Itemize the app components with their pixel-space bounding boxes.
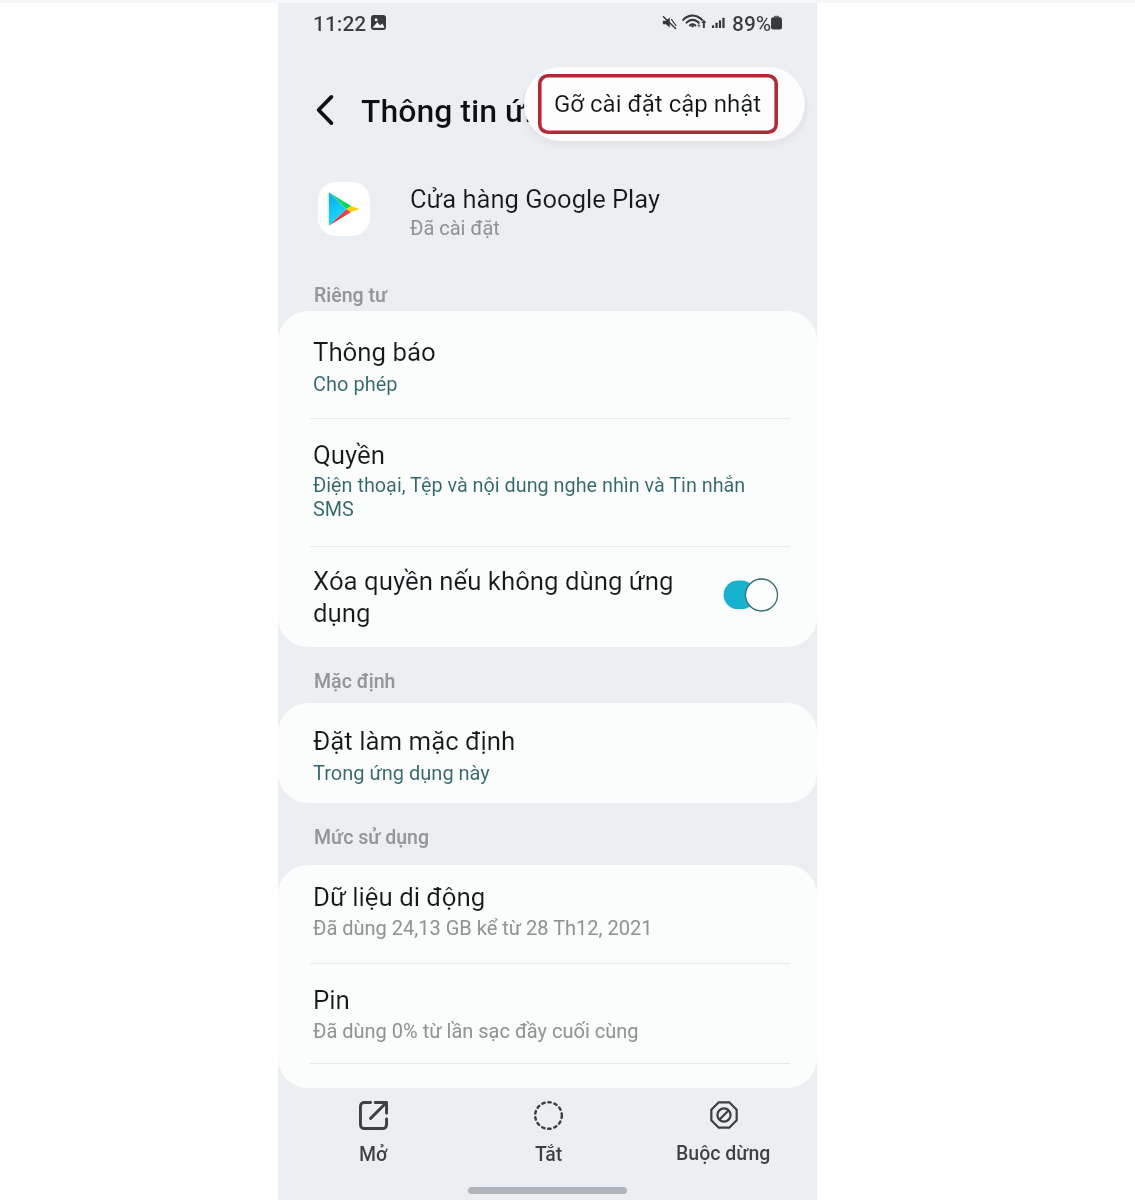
staticText: Đã cài đặt <box>410 216 500 239</box>
staticText: Xóa quyền nếu không dùng ứng dụng <box>313 566 683 629</box>
button[interactable] <box>278 547 817 647</box>
staticText: Buộc dừng <box>676 1142 771 1165</box>
staticText: Mặc định <box>314 670 396 693</box>
button[interactable]: Buộc dừng ứng dụng <box>651 1093 795 1171</box>
button[interactable]: Tắt ứng dụng <box>476 1093 620 1171</box>
button[interactable] <box>278 311 817 418</box>
staticText: Mở <box>359 1143 388 1166</box>
staticText: 11:22 <box>313 12 367 37</box>
button[interactable] <box>278 964 817 1063</box>
staticText: Thông tin ứng dụng <box>361 92 641 130</box>
staticText: Cho phép <box>313 372 398 395</box>
button[interactable] <box>278 703 817 803</box>
staticText: Điện thoại, Tệp và nội dung nghe nhìn và… <box>313 474 763 521</box>
staticText: Dữ liệu di động <box>313 882 486 912</box>
staticText: Riêng tư <box>314 284 387 307</box>
staticText: 89% <box>732 12 772 37</box>
button[interactable]: Xóa quyền nếu không dùng ứng dụng <box>716 572 786 618</box>
button[interactable]: Quay lại <box>303 88 347 132</box>
staticText: Đặt làm mặc định <box>313 726 516 756</box>
staticText: Đã dùng 0% từ lần sạc đầy cuối cùng <box>313 1019 639 1042</box>
staticText: Đã dùng 24,13 GB kể từ 28 Th12, 2021 <box>313 916 653 939</box>
staticText: Tắt <box>535 1143 563 1166</box>
button[interactable] <box>278 865 817 963</box>
staticText: Quyền <box>313 440 385 470</box>
staticText: Pin <box>313 985 350 1015</box>
staticText: Cửa hàng Google Play <box>410 184 661 214</box>
button[interactable]: Gỡ cài đặt cập nhật <box>524 67 805 141</box>
staticText: Gỡ cài đặt cập nhật <box>554 90 762 118</box>
button[interactable]: Mở ứng dụng <box>301 1093 445 1171</box>
button[interactable] <box>278 419 817 546</box>
staticText: Thông báo <box>313 337 436 367</box>
staticText: Mức sử dụng <box>314 826 429 849</box>
staticText: Trong ứng dụng này <box>313 761 490 784</box>
